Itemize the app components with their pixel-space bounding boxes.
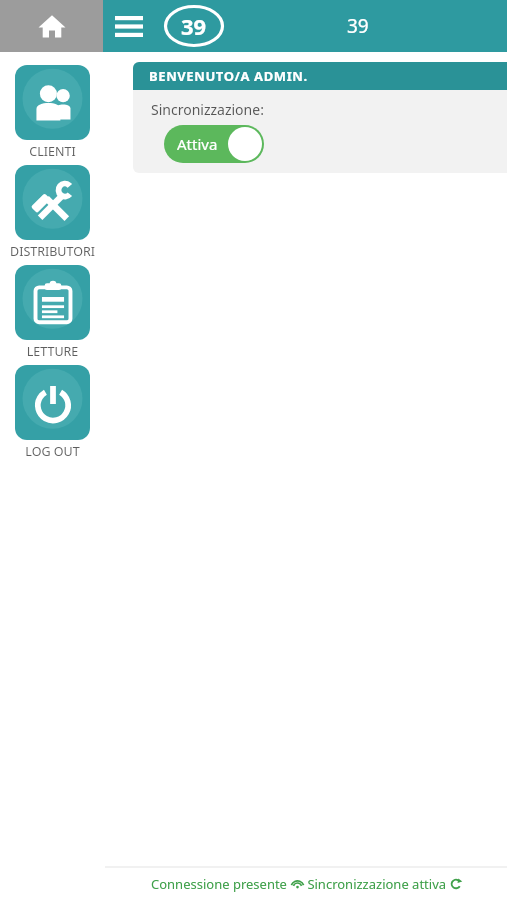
staticText: 39 [347, 13, 369, 39]
button[interactable]: Attiva [164, 125, 264, 163]
button[interactable]: DISTRIBUTORI [0, 165, 105, 260]
staticText: Sincronizzazione attiva [304, 875, 450, 893]
staticText: Connessione presente [151, 875, 291, 893]
staticText: Attiva [177, 134, 218, 154]
button[interactable]: LOG OUT [0, 365, 105, 460]
button[interactable]: CLIENTI [0, 65, 105, 160]
button[interactable]: Home [0, 0, 103, 52]
staticText: Sincronizzazione: [151, 100, 264, 119]
staticText: LETTURE [0, 343, 105, 360]
staticText: BENVENUTO/A ADMIN. [149, 67, 308, 85]
staticText: 39 [181, 11, 207, 41]
staticText: LOG OUT [0, 443, 105, 460]
staticText: DISTRIBUTORI [0, 243, 105, 260]
button[interactable]: Logo 39 [163, 4, 225, 48]
staticText: CLIENTI [0, 143, 105, 160]
button[interactable]: LETTURE [0, 265, 105, 360]
button[interactable]: Menu [106, 8, 152, 44]
